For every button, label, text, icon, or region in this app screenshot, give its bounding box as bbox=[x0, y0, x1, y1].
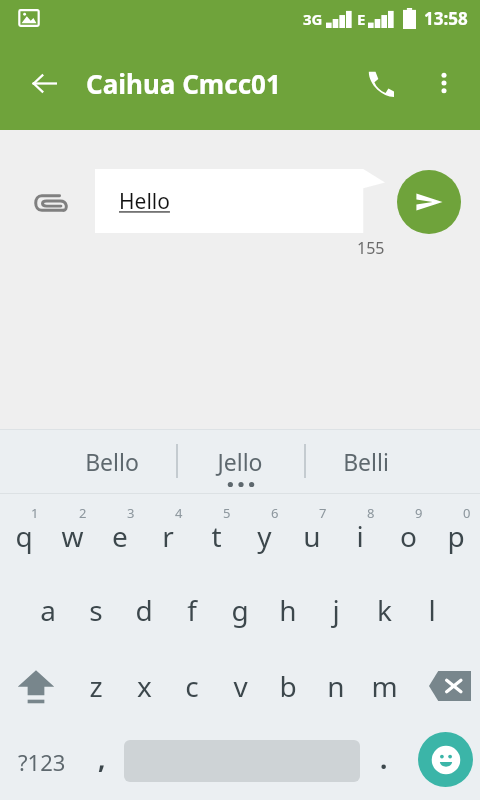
staticText: y bbox=[257, 517, 272, 555]
staticText: r bbox=[162, 517, 174, 555]
staticText: 6 bbox=[271, 504, 279, 522]
staticText: h bbox=[279, 591, 297, 629]
button[interactable]: t bbox=[192, 500, 240, 572]
button[interactable]: z bbox=[72, 648, 120, 724]
staticText: E bbox=[357, 9, 366, 29]
button[interactable]: j bbox=[312, 572, 360, 648]
button[interactable]: Jello bbox=[180, 430, 300, 493]
button[interactable]: . bbox=[364, 724, 404, 800]
staticText: 13:58 bbox=[424, 7, 468, 30]
staticText: 8 bbox=[367, 504, 375, 522]
staticText: t bbox=[211, 517, 222, 555]
staticText: n bbox=[327, 667, 345, 705]
button[interactable]: More options bbox=[422, 61, 466, 105]
button[interactable]: c bbox=[168, 648, 216, 724]
staticText: u bbox=[303, 517, 321, 555]
button[interactable]: h bbox=[264, 572, 312, 648]
staticText: 3 bbox=[127, 504, 135, 522]
button[interactable]: i bbox=[336, 500, 384, 572]
staticText: 9 bbox=[415, 504, 423, 522]
staticText: c bbox=[185, 667, 199, 705]
staticText: i bbox=[356, 517, 364, 555]
staticText: Caihua Cmcc01 bbox=[86, 66, 281, 101]
staticText: 5 bbox=[223, 504, 231, 522]
staticText: d bbox=[135, 591, 153, 629]
staticText: s bbox=[89, 591, 103, 629]
staticText: 4 bbox=[175, 504, 183, 522]
staticText: 3G bbox=[303, 9, 323, 29]
button[interactable]: l bbox=[408, 572, 456, 648]
staticText: 1 bbox=[31, 504, 39, 522]
staticText: x bbox=[137, 667, 152, 705]
button[interactable]: Backspace bbox=[420, 648, 480, 724]
staticText: Hello bbox=[119, 187, 170, 216]
staticText: w bbox=[61, 517, 84, 555]
button[interactable]: e bbox=[96, 500, 144, 572]
button[interactable]: r bbox=[144, 500, 192, 572]
staticText: Belli bbox=[343, 446, 389, 477]
staticText: Bello bbox=[85, 446, 139, 477]
button[interactable]: b bbox=[264, 648, 312, 724]
button[interactable]: s bbox=[72, 572, 120, 648]
staticText: e bbox=[112, 517, 128, 555]
staticText: 2 bbox=[79, 504, 87, 522]
staticText: 155 bbox=[357, 237, 385, 259]
button[interactable]: u bbox=[288, 500, 336, 572]
staticText: . bbox=[380, 741, 388, 776]
staticText: q bbox=[15, 517, 33, 555]
staticText: z bbox=[89, 667, 103, 705]
button[interactable]: Call bbox=[356, 59, 404, 107]
button[interactable]: m bbox=[360, 648, 408, 724]
button[interactable]: Back bbox=[22, 61, 66, 105]
staticText: g bbox=[231, 591, 249, 629]
button[interactable]: k bbox=[360, 572, 408, 648]
button[interactable]: Bello bbox=[52, 430, 172, 493]
button[interactable]: a bbox=[24, 572, 72, 648]
staticText: 0 bbox=[463, 504, 471, 522]
button[interactable]: Attach bbox=[22, 175, 78, 231]
button[interactable]: f bbox=[168, 572, 216, 648]
button[interactable]: w bbox=[48, 500, 96, 572]
staticText: p bbox=[447, 517, 465, 555]
button[interactable]: Belli bbox=[306, 430, 426, 493]
staticText: b bbox=[279, 667, 297, 705]
staticText: Jello bbox=[217, 446, 263, 477]
staticText: 7 bbox=[319, 504, 327, 522]
button[interactable]: Emoji bbox=[418, 732, 473, 787]
button[interactable]: x bbox=[120, 648, 168, 724]
staticText: j bbox=[332, 591, 340, 629]
staticText: m bbox=[371, 667, 398, 705]
button[interactable]: g bbox=[216, 572, 264, 648]
button[interactable]: , bbox=[82, 724, 122, 800]
button[interactable]: y bbox=[240, 500, 288, 572]
button[interactable]: Send bbox=[397, 170, 461, 234]
staticText: k bbox=[377, 591, 392, 629]
button[interactable]: Shift bbox=[0, 648, 72, 724]
button[interactable]: v bbox=[216, 648, 264, 724]
staticText: v bbox=[233, 667, 248, 705]
staticText: a bbox=[40, 591, 56, 629]
button[interactable]: o bbox=[384, 500, 432, 572]
staticText: l bbox=[428, 591, 436, 629]
button[interactable]: p bbox=[432, 500, 480, 572]
staticText: ?123 bbox=[18, 747, 66, 777]
button[interactable]: q bbox=[0, 500, 48, 572]
staticText: f bbox=[187, 591, 197, 629]
staticText: , bbox=[98, 741, 106, 776]
button[interactable]: d bbox=[120, 572, 168, 648]
button[interactable]: ?123 bbox=[2, 724, 82, 800]
button[interactable]: Hello bbox=[95, 169, 385, 233]
button[interactable]: n bbox=[312, 648, 360, 724]
staticText: o bbox=[400, 517, 417, 555]
